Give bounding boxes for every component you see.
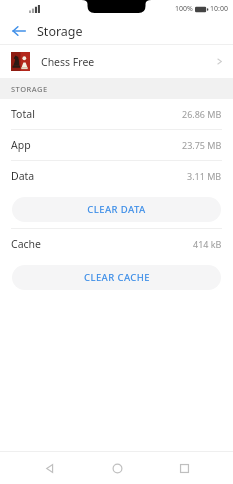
button[interactable]: Recent apps (166, 452, 202, 484)
staticText: 100% (175, 4, 193, 14)
button[interactable]: CLEAR CACHE (12, 265, 221, 290)
staticText: 26.86 MB (182, 108, 222, 120)
button[interactable]: Chess Free (0, 45, 233, 78)
staticText: STORAGE (11, 84, 48, 94)
button[interactable]: Back (31, 452, 67, 484)
staticText: Total (11, 107, 35, 121)
button[interactable]: Cache (0, 229, 233, 259)
staticText: Data (11, 169, 35, 183)
staticText: 414 kB (193, 238, 222, 250)
staticText: 10:00 (210, 4, 228, 14)
button[interactable]: CLEAR DATA (12, 197, 221, 222)
button[interactable]: Data (0, 161, 233, 191)
button[interactable]: Total (0, 99, 233, 129)
staticText: 3.11 MB (187, 170, 222, 182)
button[interactable]: Home (99, 452, 135, 484)
staticText: CLEAR CACHE (84, 271, 150, 284)
staticText: Cache (11, 237, 41, 251)
staticText: Chess Free (41, 55, 95, 69)
staticText: App (11, 138, 31, 152)
button[interactable]: App (0, 130, 233, 160)
staticText: 23.75 MB (182, 139, 222, 151)
button[interactable]: Back (8, 20, 30, 42)
staticText: Storage (37, 23, 83, 40)
staticText: CLEAR DATA (87, 203, 146, 216)
